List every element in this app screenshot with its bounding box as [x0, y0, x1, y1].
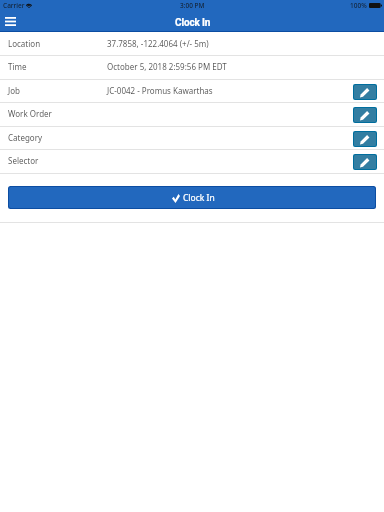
staticText: 37.7858, -122.4064 (+/- 5m): [107, 38, 209, 49]
button[interactable]: Edit Job: [354, 85, 376, 99]
button[interactable]: Time: [0, 55, 384, 78]
staticText: Location: [8, 38, 41, 49]
button[interactable]: Edit Work Order: [354, 108, 376, 122]
staticText: Clock In: [183, 192, 215, 204]
button[interactable]: Work Order: [0, 102, 384, 125]
button[interactable]: Menu: [5, 17, 16, 26]
staticText: Work Order: [8, 108, 52, 119]
button[interactable]: Job: [0, 79, 384, 102]
staticText: Selector: [8, 155, 39, 166]
staticText: Time: [8, 61, 27, 72]
staticText: Category: [8, 132, 43, 143]
button[interactable]: Edit Selector: [354, 155, 376, 169]
staticText: Clock In: [175, 17, 211, 29]
staticText: October 5, 2018 2:59:56 PM EDT: [107, 61, 227, 72]
staticText: Job: [8, 85, 20, 96]
button[interactable]: Edit Category: [354, 132, 376, 146]
button[interactable]: Clock In: [9, 187, 375, 208]
staticText: Carrier: [3, 1, 25, 10]
button[interactable]: Selector: [0, 149, 384, 172]
staticText: 3:00 PM: [180, 1, 205, 10]
button[interactable]: Category: [0, 126, 384, 149]
staticText: JC-0042 - Promus Kawarthas: [107, 85, 213, 96]
staticText: 100%: [350, 1, 367, 10]
button[interactable]: Location: [0, 32, 384, 55]
